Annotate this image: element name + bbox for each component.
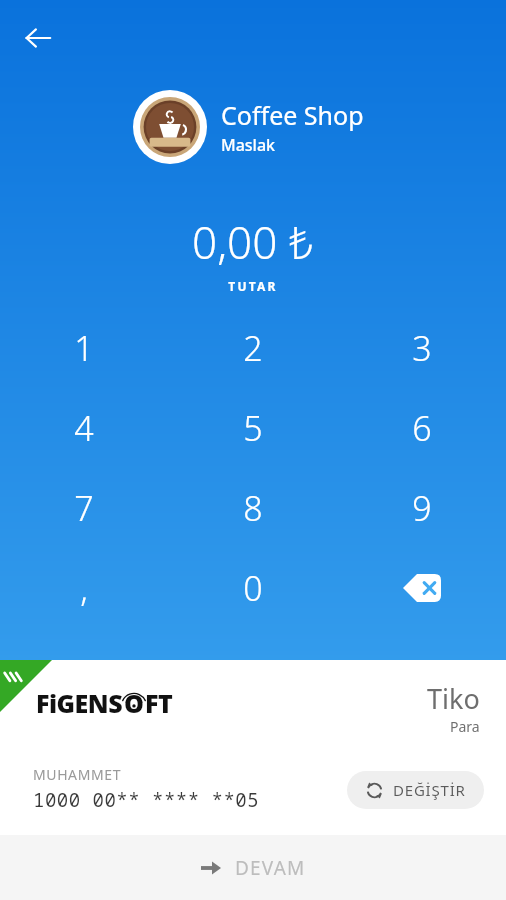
staticText: 8 <box>243 485 263 531</box>
staticText: 5 <box>243 405 263 451</box>
staticText: 4 <box>74 405 94 451</box>
staticText: FT <box>145 686 173 720</box>
staticText: 7 <box>74 485 94 531</box>
staticText: DEĞİŞTİR <box>393 780 466 800</box>
staticText: , <box>80 565 88 611</box>
button[interactable]: Coffee Shop <box>133 90 364 164</box>
staticText: Coffee Shop <box>221 98 364 132</box>
button[interactable]: 8 <box>168 468 337 548</box>
button[interactable]: 3 <box>337 308 506 388</box>
staticText: 2 <box>243 325 263 371</box>
staticText: 1 <box>74 325 94 371</box>
staticText: 0 <box>243 565 263 611</box>
button[interactable]: 7 <box>0 468 168 548</box>
button[interactable]: Backspace <box>337 548 506 628</box>
staticText: DEVAM <box>235 855 306 881</box>
button[interactable]: 9 <box>337 468 506 548</box>
button[interactable]: 0 <box>168 548 337 628</box>
staticText: Para <box>450 717 480 736</box>
staticText: TUTAR <box>228 278 278 294</box>
staticText: 6 <box>412 405 432 451</box>
staticText: FiGENS <box>36 686 123 720</box>
staticText: 3 <box>412 325 432 371</box>
button[interactable]: 4 <box>0 388 168 468</box>
button[interactable]: , <box>0 548 168 628</box>
button[interactable]: Back <box>14 14 62 62</box>
staticText: Maslak <box>221 134 276 156</box>
button[interactable]: 2 <box>168 308 337 388</box>
staticText: 0,00 ₺ <box>192 212 314 272</box>
button[interactable]: DEĞİŞTİR <box>347 771 484 809</box>
staticText: MUHAMMET <box>33 765 122 784</box>
button[interactable]: 6 <box>337 388 506 468</box>
button[interactable]: 5 <box>168 388 337 468</box>
staticText: 1000 00** **** **05 <box>33 787 260 813</box>
button[interactable]: 1 <box>0 308 168 388</box>
staticText: Tiko <box>427 680 480 717</box>
staticText: 9 <box>412 485 432 531</box>
staticText: O <box>124 686 144 720</box>
button[interactable]: DEVAM <box>0 835 506 900</box>
